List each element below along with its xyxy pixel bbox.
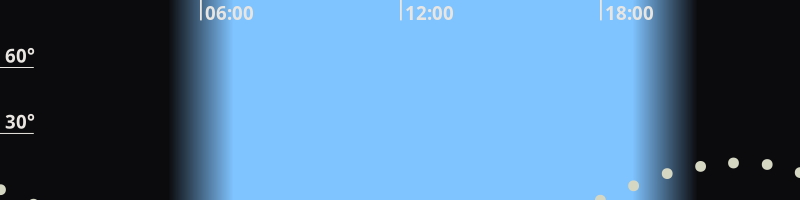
- staticText: 60°: [5, 43, 35, 68]
- staticText: 18:00: [605, 0, 654, 25]
- staticText: 06:00: [205, 0, 254, 25]
- staticText: 12:00: [405, 0, 454, 25]
- staticText: 30°: [5, 109, 35, 134]
